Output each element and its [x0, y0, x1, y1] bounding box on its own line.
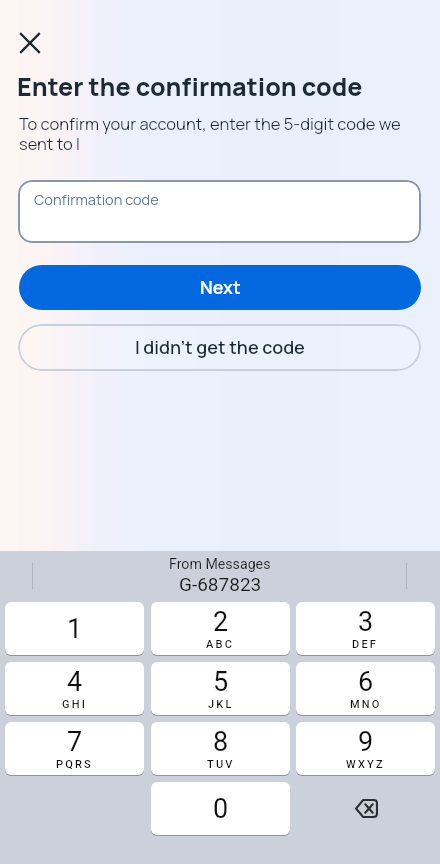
- staticText: GHI: [62, 698, 88, 711]
- button[interactable]: I didn’t get the code: [18, 324, 421, 371]
- staticText: 9: [358, 726, 374, 758]
- button[interactable]: 0: [151, 782, 290, 835]
- staticText: 1: [67, 613, 83, 645]
- button[interactable]: 3: [296, 602, 435, 655]
- staticText: MNO: [350, 698, 382, 711]
- staticText: Confirmation code: [34, 190, 159, 210]
- staticText: 7: [67, 726, 83, 758]
- staticText: Enter the confirmation code: [17, 69, 363, 103]
- staticText: 0: [213, 793, 229, 825]
- button[interactable]: 9: [296, 722, 435, 775]
- staticText: 6: [358, 666, 374, 698]
- staticText: 8: [213, 726, 229, 758]
- staticText: 3: [358, 606, 374, 638]
- staticText: I didn’t get the code: [135, 335, 305, 360]
- button[interactable]: Next: [19, 265, 421, 310]
- staticText: TUV: [207, 758, 235, 771]
- staticText: 5: [213, 666, 229, 698]
- staticText: PQRS: [56, 758, 93, 771]
- staticText: Next: [200, 275, 241, 300]
- staticText: DEF: [352, 638, 379, 651]
- button[interactable]: 4: [5, 662, 144, 715]
- staticText: JKL: [208, 698, 234, 711]
- staticText: ABC: [206, 638, 235, 651]
- button[interactable]: Confirmation code: [18, 180, 421, 243]
- button[interactable]: 5: [151, 662, 290, 715]
- button[interactable]: 2: [151, 602, 290, 655]
- staticText: G-687823: [179, 573, 262, 595]
- button[interactable]: 6: [296, 662, 435, 715]
- button[interactable]: Close: [11, 24, 48, 61]
- button[interactable]: 7: [5, 722, 144, 775]
- staticText: 4: [67, 666, 83, 698]
- staticText: 2: [213, 606, 229, 638]
- button[interactable]: 8: [151, 722, 290, 775]
- button[interactable]: Backspace: [296, 782, 435, 835]
- staticText: WXYZ: [346, 758, 385, 771]
- staticText: To confirm your account, enter the 5-dig…: [19, 112, 429, 155]
- staticText: From Messages: [169, 556, 271, 573]
- button[interactable]: 1: [5, 602, 144, 655]
